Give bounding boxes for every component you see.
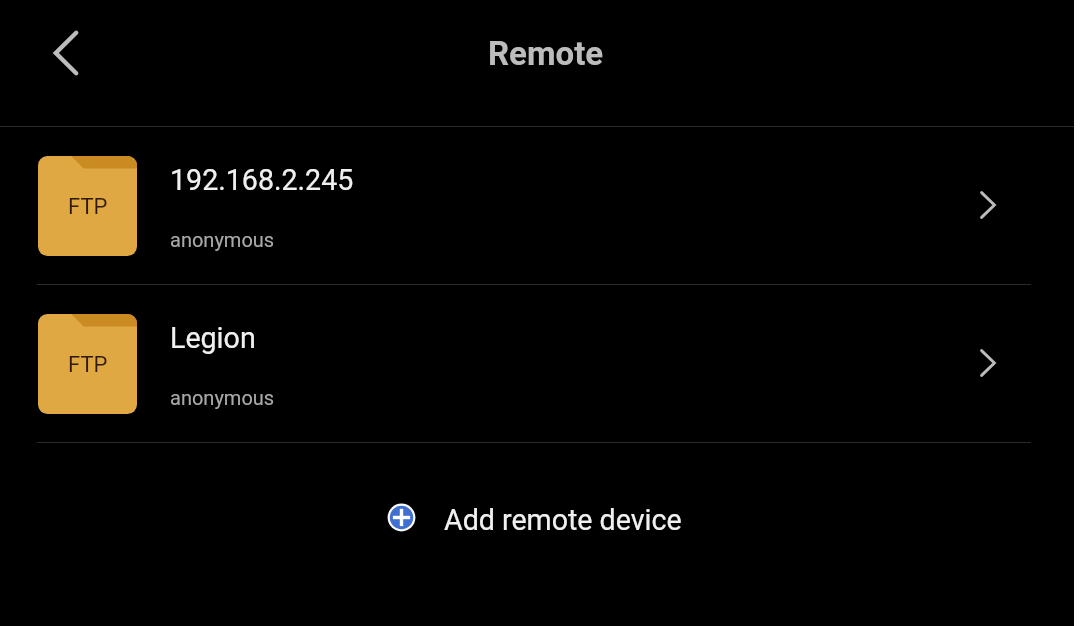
staticText: Legion — [170, 321, 256, 355]
staticText: Add remote device — [444, 503, 682, 537]
staticText: anonymous — [170, 228, 275, 251]
button[interactable]: FTP — [0, 127, 1074, 285]
button[interactable]: FTP — [0, 285, 1074, 443]
staticText: FTP — [68, 194, 108, 220]
staticText: Remote — [488, 34, 604, 73]
button[interactable]: Add remote device — [372, 492, 697, 542]
button[interactable]: Back — [28, 15, 103, 90]
staticText: anonymous — [170, 386, 275, 409]
staticText: FTP — [68, 352, 108, 378]
staticText: 192.168.2.245 — [170, 163, 354, 197]
